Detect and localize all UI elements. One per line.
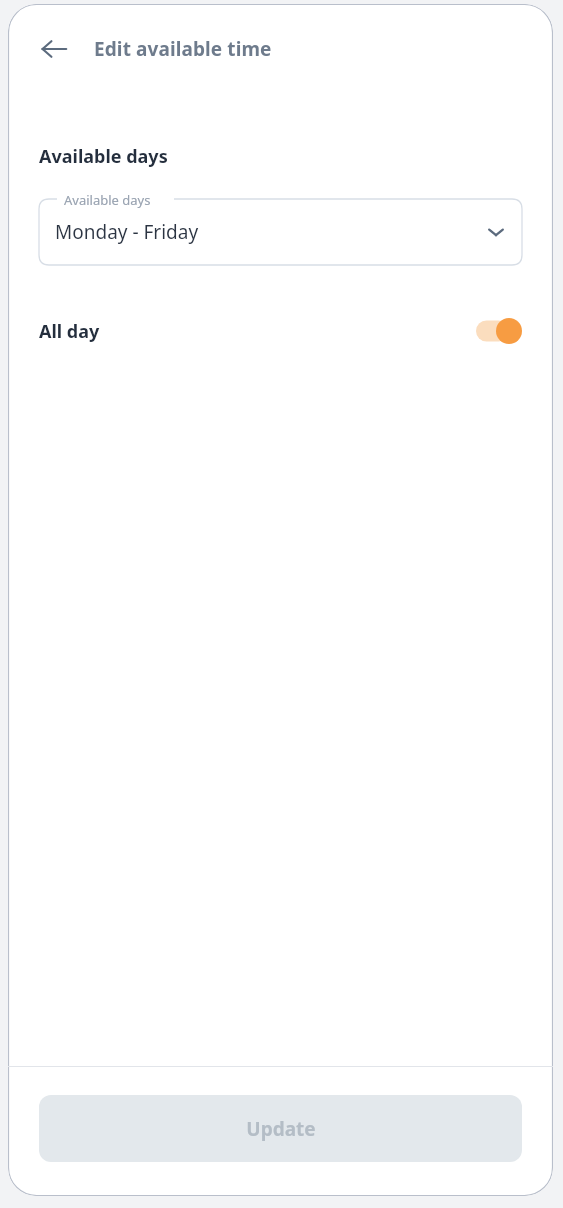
button[interactable]: Monday - Friday <box>39 199 522 265</box>
staticText: Update <box>246 1116 316 1142</box>
button[interactable]: All day <box>8 307 553 355</box>
staticText: All day <box>39 319 476 344</box>
button[interactable]: Back <box>32 27 76 71</box>
button[interactable]: All day toggle <box>476 317 522 345</box>
button[interactable]: Update <box>39 1095 522 1162</box>
staticText: Monday - Friday <box>55 219 486 245</box>
staticText: Edit available time <box>94 36 272 62</box>
staticText: Available days <box>64 191 151 209</box>
staticText: Available days <box>39 144 168 169</box>
